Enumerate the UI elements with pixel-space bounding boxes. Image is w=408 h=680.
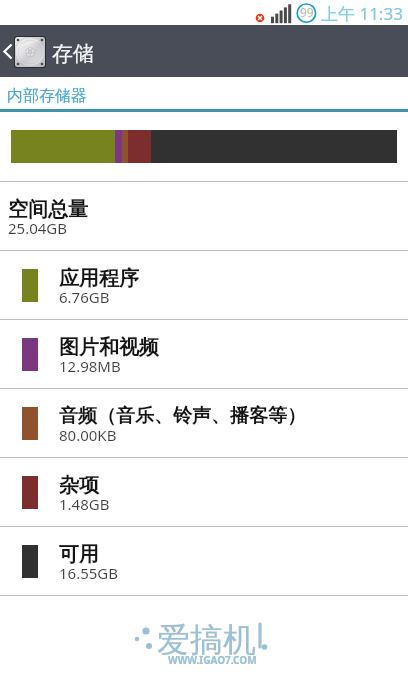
staticText: 1.48GB	[59, 494, 110, 514]
staticText: WWW.IGAO7.COM	[168, 653, 257, 667]
button[interactable]: 应用程序	[0, 250, 408, 319]
staticText: 内部存储器	[7, 86, 87, 106]
staticText: 可用	[59, 542, 99, 567]
button[interactable]: 内部存储器	[0, 77, 408, 109]
staticText: 上午 11:33	[321, 2, 403, 25]
staticText: 99	[300, 4, 314, 20]
staticText: 音频（音乐、铃声、播客等）	[59, 404, 306, 428]
staticText: 80.00KB	[59, 425, 117, 445]
button[interactable]: 图片和视频	[0, 319, 408, 388]
staticText: 应用程序	[59, 266, 139, 291]
button[interactable]: Back	[0, 25, 408, 77]
staticText: 6.76GB	[59, 287, 110, 307]
staticText: 爱搞机	[157, 619, 256, 661]
button[interactable]: 音频（音乐、铃声、播客等）	[0, 388, 408, 457]
staticText: 空间总量	[8, 197, 88, 222]
button[interactable]: 可用	[0, 526, 408, 595]
staticText: 杂项	[59, 473, 99, 498]
other: Back	[3, 44, 12, 59]
staticText: 存储	[52, 41, 94, 67]
staticText: 16.55GB	[59, 563, 119, 583]
staticText: 25.04GB	[8, 218, 68, 238]
staticText: 12.98MB	[59, 356, 121, 376]
staticText: 图片和视频	[59, 335, 159, 360]
button[interactable]: 空间总量	[0, 181, 408, 250]
button[interactable]: 杂项	[0, 457, 408, 526]
